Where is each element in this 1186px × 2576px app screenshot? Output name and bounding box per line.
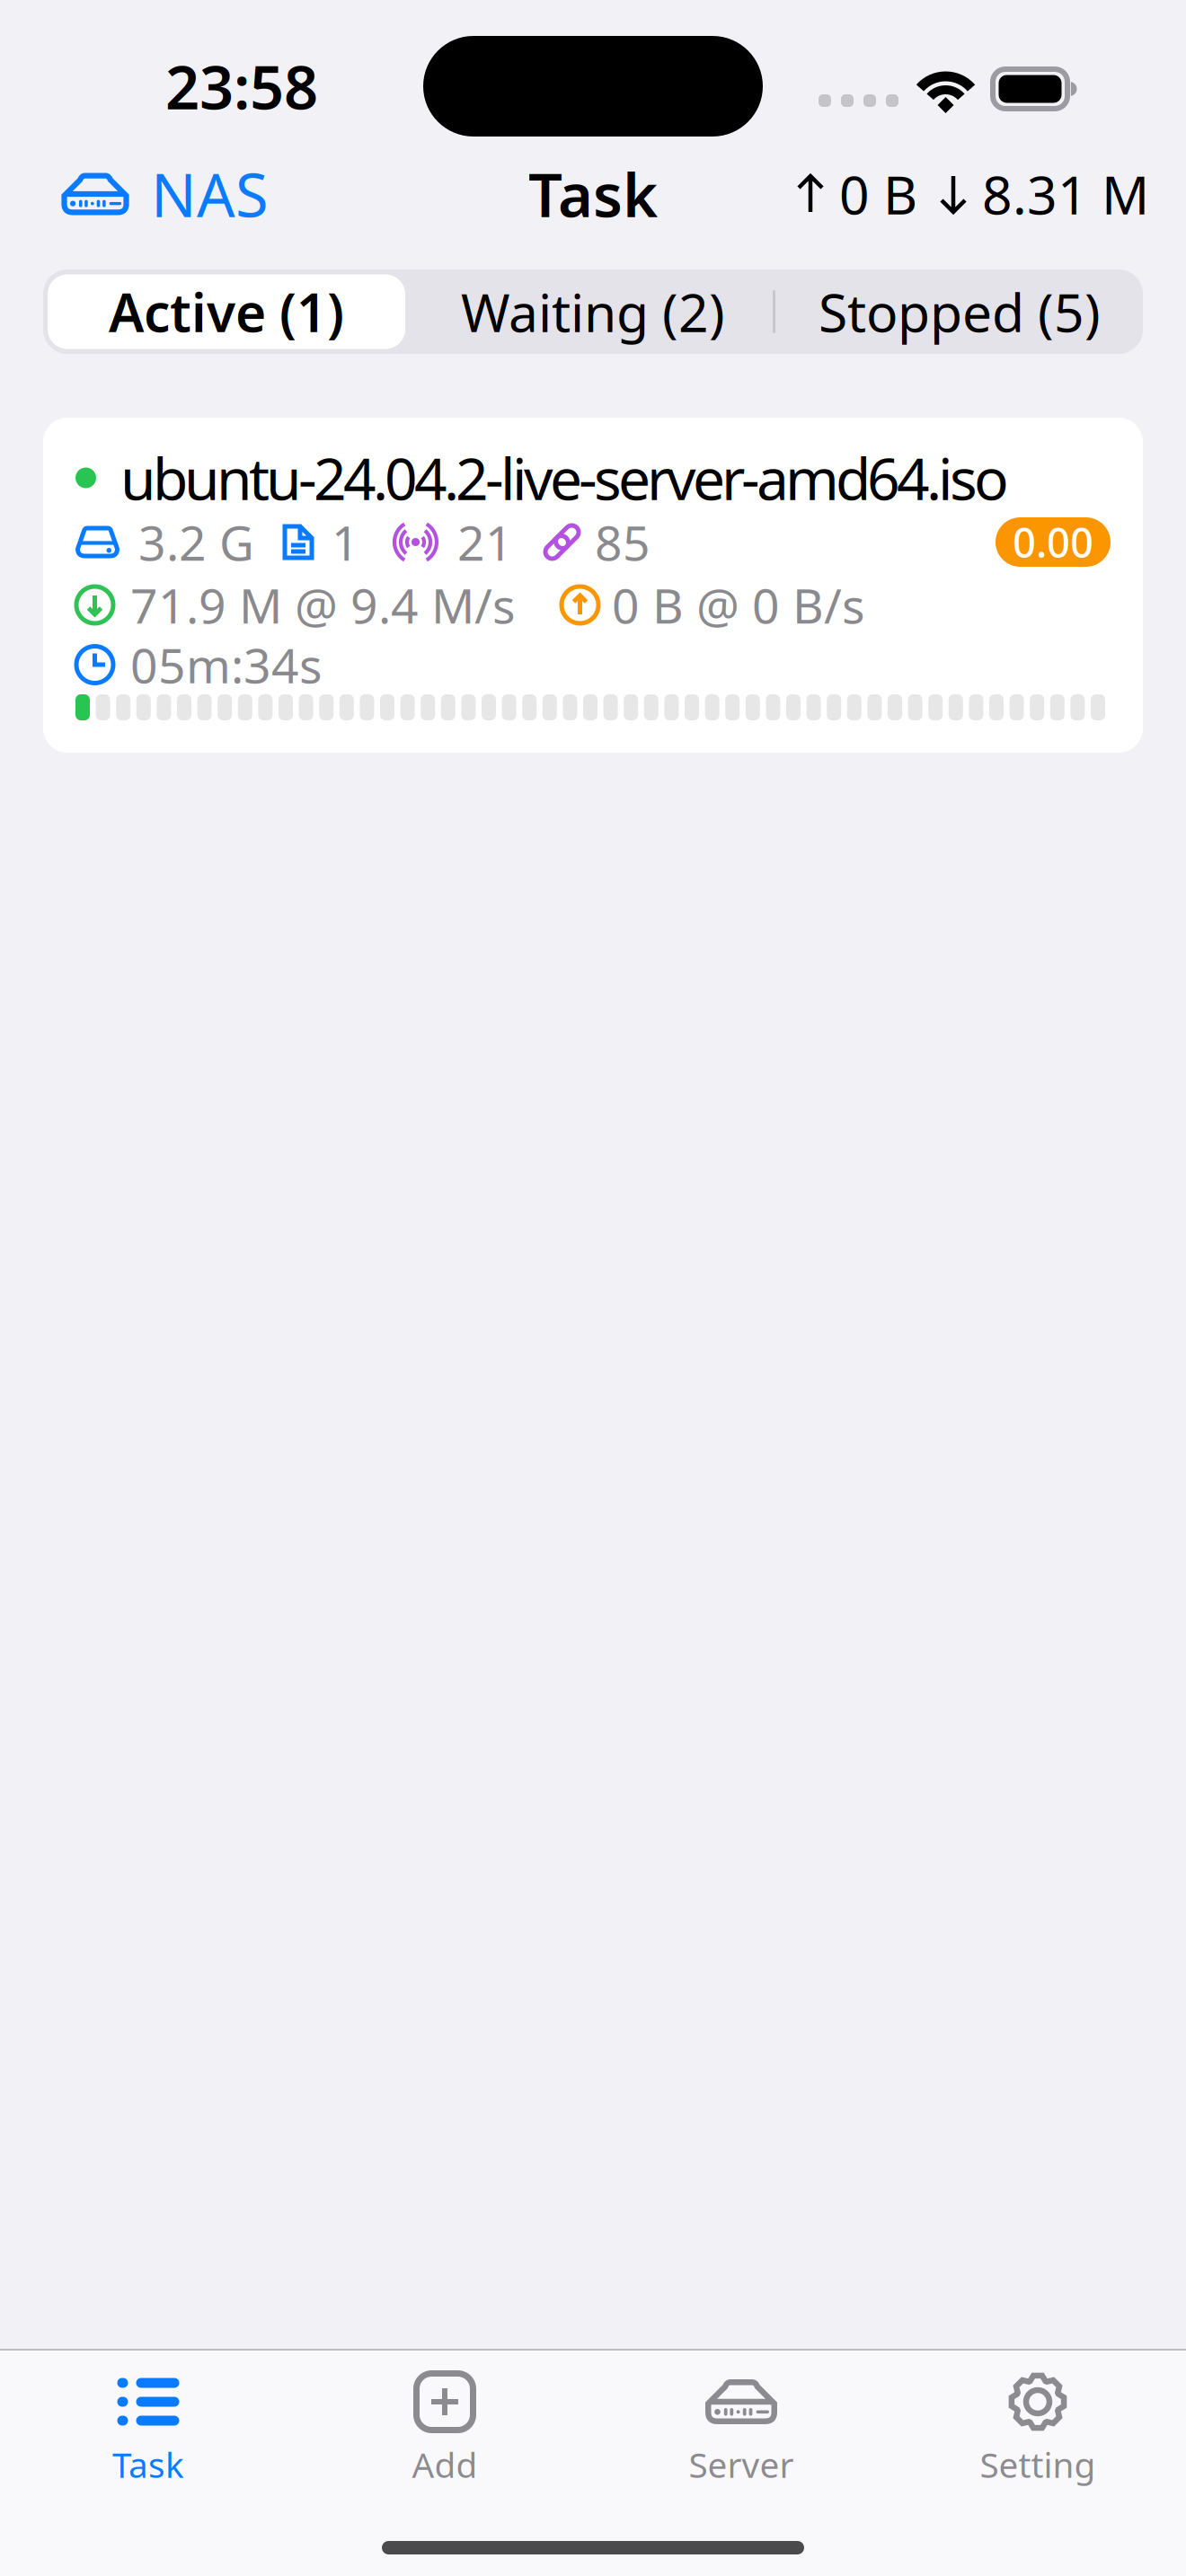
staticText: 85 — [595, 510, 651, 574]
button[interactable]: Active (1) — [43, 269, 410, 354]
staticText: 05m:34s — [130, 633, 323, 696]
staticText: Task — [112, 2441, 184, 2487]
staticText: 8.31 M — [982, 159, 1149, 229]
button[interactable]: Add — [296, 2351, 593, 2501]
staticText: 0 B @ 0 B/s — [612, 573, 865, 637]
staticText: Add — [412, 2441, 478, 2487]
staticText: Server — [689, 2441, 794, 2487]
button[interactable]: Task — [0, 2351, 296, 2501]
staticText: ubuntu-24.04.2-live-server-amd64.iso — [120, 440, 1009, 516]
button[interactable]: Stopped (5) — [776, 269, 1143, 354]
button[interactable]: 0 B — [780, 143, 1149, 245]
staticText: 23:58 — [165, 46, 318, 126]
staticText: 1 — [332, 510, 359, 574]
staticText: NAS — [151, 154, 269, 234]
button[interactable]: Waiting (2) — [410, 269, 776, 354]
button[interactable]: Setting — [889, 2351, 1186, 2501]
staticText: 0.00 — [1013, 515, 1093, 569]
staticText: 71.9 M @ 9.4 M/s — [130, 573, 516, 637]
staticText: 21 — [457, 510, 513, 574]
staticText: 3.2 G — [138, 510, 254, 574]
staticText: Stopped (5) — [819, 277, 1101, 347]
staticText: Waiting (2) — [461, 277, 725, 347]
button[interactable]: Server — [593, 2351, 889, 2501]
button[interactable]: ubuntu-24.04.2-live-server-amd64.iso — [43, 418, 1143, 753]
staticText: Task — [528, 154, 658, 234]
button[interactable]: NAS — [61, 138, 283, 250]
staticText: Active (1) — [109, 277, 344, 347]
staticText: 0 B — [839, 159, 917, 229]
staticText: Setting — [980, 2441, 1096, 2487]
